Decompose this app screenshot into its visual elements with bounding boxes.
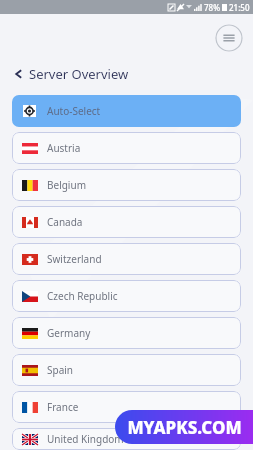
button[interactable]: Canada (12, 206, 241, 238)
staticText: Germany (47, 326, 91, 340)
button[interactable]: Germany (12, 317, 241, 349)
staticText: MYAPKS.COM (127, 416, 242, 439)
button[interactable]: Menu (215, 24, 243, 52)
staticText: Spain (47, 363, 74, 377)
button[interactable]: Server Overview (14, 62, 129, 86)
staticText: France (47, 400, 79, 414)
button[interactable]: Austria (12, 132, 241, 164)
staticText: Server Overview (29, 65, 129, 83)
button[interactable]: Auto-Select (12, 95, 241, 127)
staticText: Auto-Select (47, 104, 101, 118)
staticText: 78% (204, 2, 220, 13)
staticText: Canada (47, 215, 83, 229)
button[interactable]: Belgium (12, 169, 241, 201)
staticText: 21:50 (229, 2, 250, 13)
button[interactable]: France (12, 391, 241, 423)
staticText: United Kingdom (47, 432, 124, 446)
button[interactable]: Switzerland (12, 243, 241, 275)
staticText: Austria (47, 141, 81, 155)
button[interactable]: United Kingdom (12, 428, 241, 450)
staticText: Switzerland (47, 252, 102, 266)
button[interactable]: Spain (12, 354, 241, 386)
staticText: Czech Republic (47, 289, 118, 303)
button[interactable]: Czech Republic (12, 280, 241, 312)
staticText: Belgium (47, 178, 86, 192)
